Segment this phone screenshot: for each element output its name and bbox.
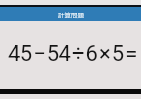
staticText: 計算問題 [58,10,84,19]
staticText: 45 − 54 ÷ 6 × 5 = [8,41,137,67]
button[interactable]: 計算問題 [0,7,141,21]
